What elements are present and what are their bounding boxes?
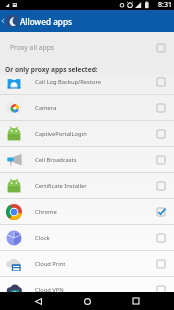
staticText: Or only proxy apps selected: [5,65,98,74]
button[interactable]: Cloud VPN [0,277,174,303]
button[interactable]: Back [26,292,50,310]
staticText: Clock [35,234,155,242]
staticText: CaptivePortalLogin [35,130,155,138]
button[interactable]: Camera [0,95,174,121]
button[interactable]: Certificate Installer [0,173,174,199]
staticText: Allowed apps [20,16,72,27]
button[interactable]: Proxy all apps [0,32,174,63]
staticText: Certificate Installer [35,182,155,190]
staticText: Cell Broadcasts [35,156,155,164]
button[interactable]: CaptivePortalLogin [0,121,174,147]
button[interactable]: Cell Broadcasts [0,147,174,173]
staticText: Proxy all apps [10,43,155,52]
button[interactable]: Clock [0,225,174,251]
staticText: Call Log Backup/Restore [35,78,155,86]
staticText: Cloud Print [35,260,155,268]
button[interactable]: Home [75,292,99,310]
button[interactable]: Chrome [0,199,174,225]
button[interactable]: Recent apps [124,292,148,310]
button[interactable]: Cloud Print [0,251,174,277]
staticText: Chrome [35,208,155,216]
staticText: 8:31 [158,0,172,10]
staticText: Cloud VPN [35,286,155,294]
button[interactable]: Navigate up [0,10,6,32]
staticText: Camera [35,104,155,112]
button[interactable]: Call Log Backup/Restore [0,75,174,95]
